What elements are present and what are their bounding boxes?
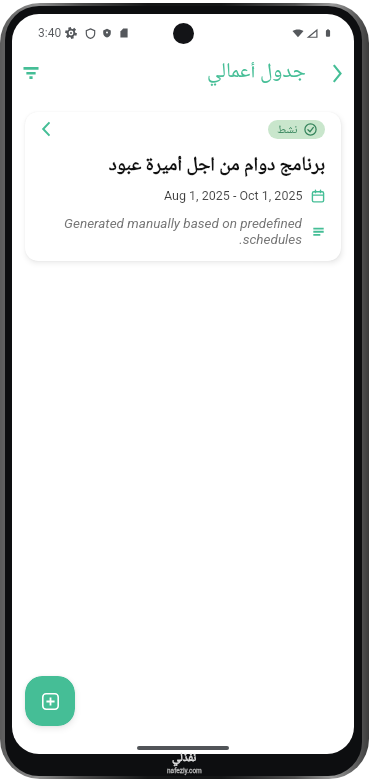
staticText: 3:40 [38, 26, 62, 40]
button[interactable]: Filter [13, 55, 49, 91]
staticText: برنامج دوام من اجل أميرة عبود [39, 152, 325, 179]
button[interactable]: نشط [268, 120, 325, 139]
staticText: Generated manually based on predefined [64, 215, 302, 231]
staticText: nafezly.com [167, 767, 202, 775]
button[interactable]: Open schedule [25, 112, 341, 261]
button[interactable]: Open schedule [35, 118, 57, 140]
button[interactable]: Back [322, 58, 352, 88]
staticText: نشط [277, 122, 298, 138]
staticText: جدول أعمالي [207, 58, 306, 87]
staticText: Aug 1, 2025 - Oct 1, 2025 [164, 188, 303, 203]
button[interactable]: Add new schedule [25, 676, 75, 726]
staticText: .schedules [239, 231, 302, 247]
staticText: نفذلي [172, 750, 197, 766]
